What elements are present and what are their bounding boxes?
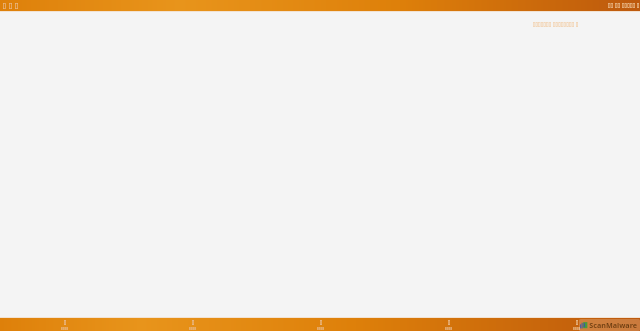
button[interactable]: Tools bbox=[317, 319, 324, 331]
button[interactable]: Reports bbox=[445, 319, 452, 331]
button[interactable]: Navigation bbox=[3, 3, 18, 9]
button[interactable]: Settings bbox=[573, 319, 580, 331]
button[interactable]: Home bbox=[61, 319, 68, 331]
button[interactable]: Menu bbox=[608, 3, 639, 8]
button[interactable]: Scan bbox=[189, 319, 196, 331]
staticText: ScanMalware bbox=[589, 320, 637, 330]
